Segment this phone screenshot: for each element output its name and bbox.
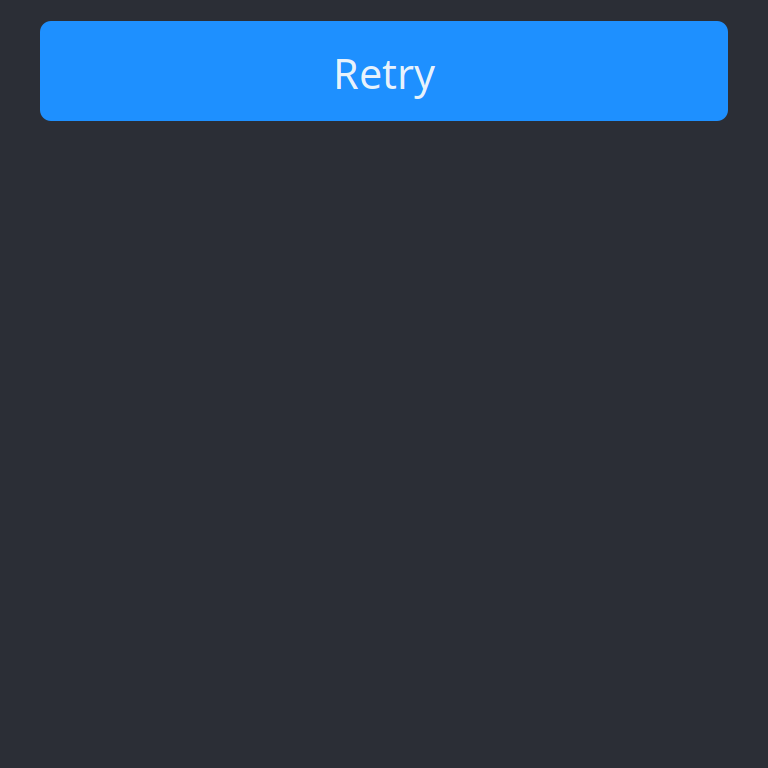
button[interactable]: Retry bbox=[40, 21, 728, 121]
staticText: Retry bbox=[333, 46, 435, 100]
